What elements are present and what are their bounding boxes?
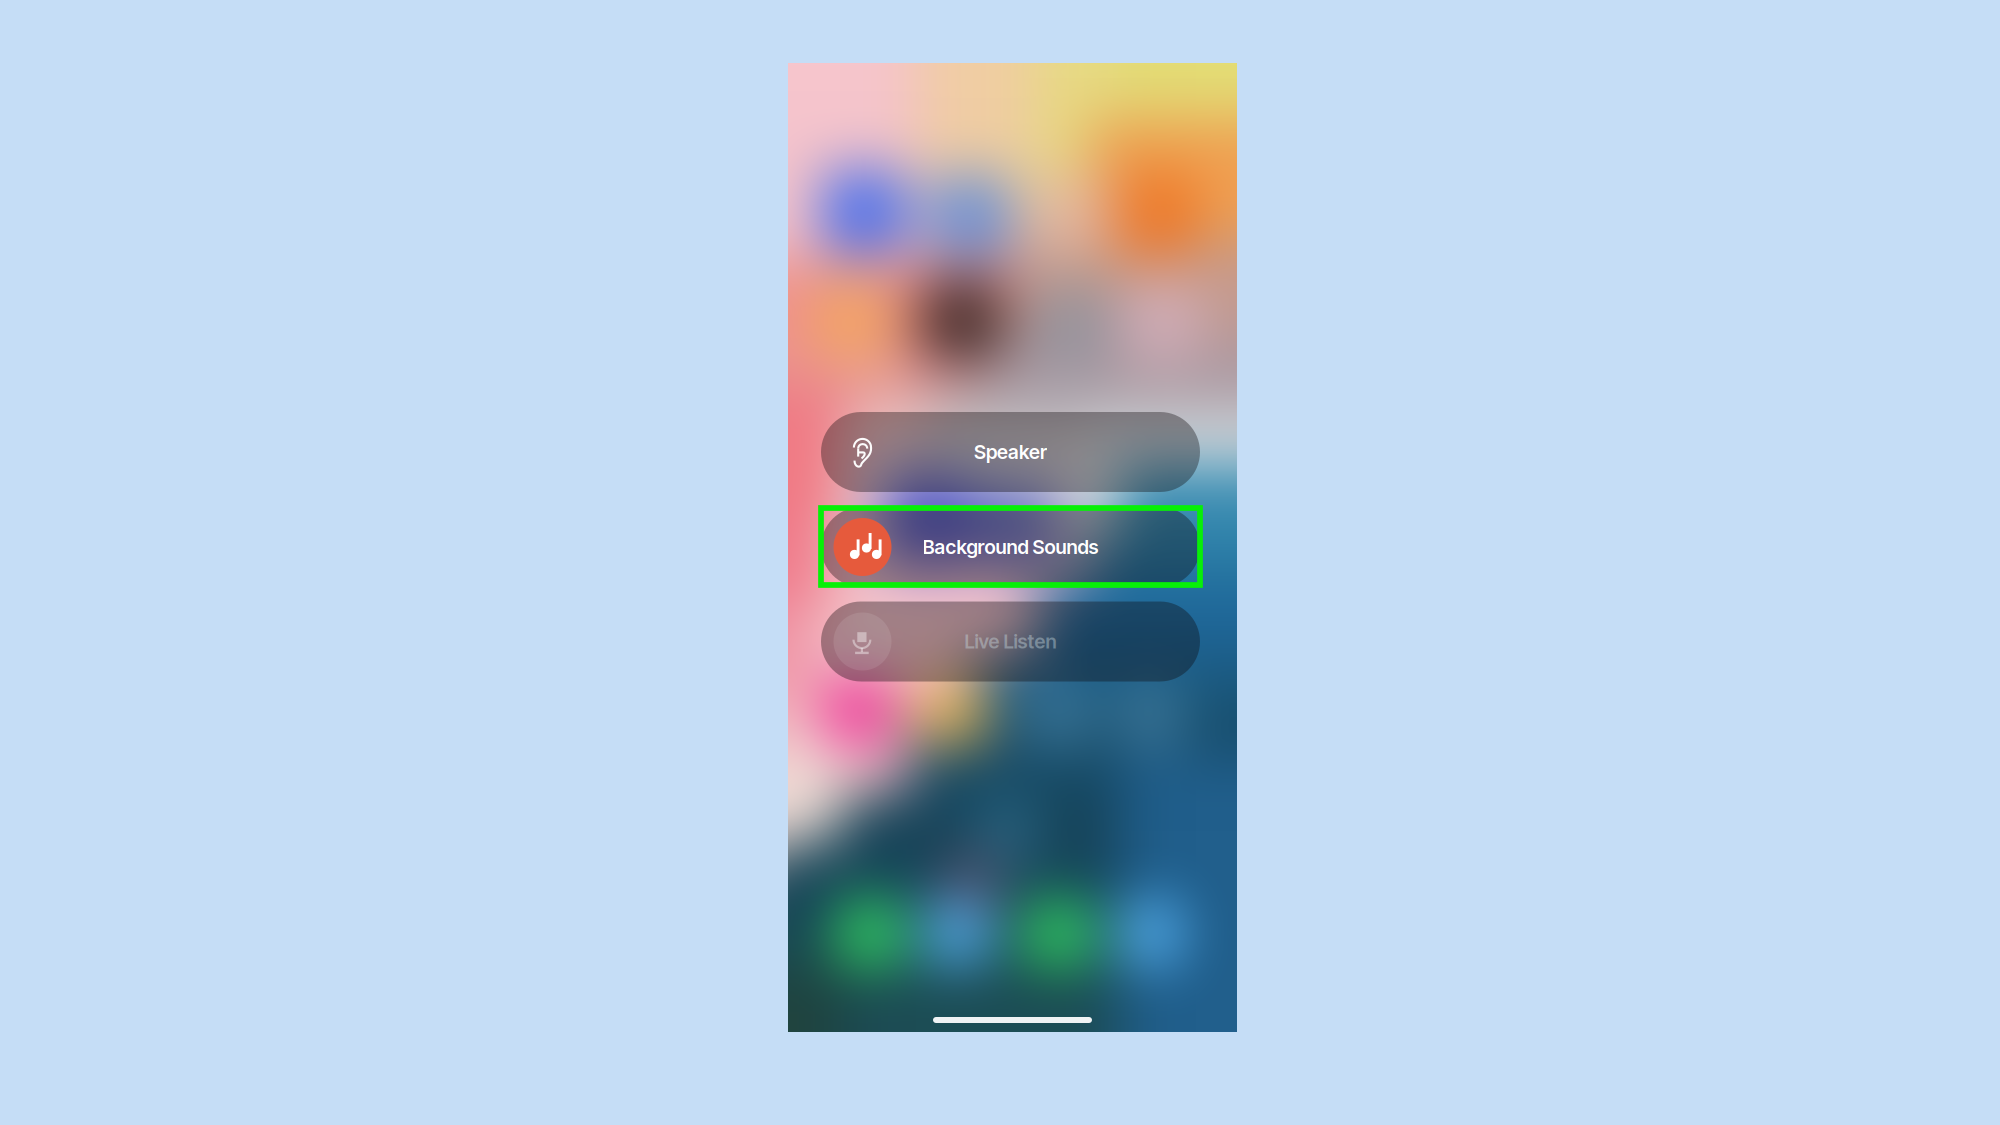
button[interactable]: Speaker [821, 412, 1200, 492]
button[interactable]: Live Listen [821, 601, 1200, 681]
button[interactable]: Background Sounds [821, 507, 1200, 587]
staticText: Live Listen [964, 630, 1056, 653]
staticText: Speaker [974, 440, 1047, 464]
staticText: Background Sounds [922, 535, 1098, 559]
